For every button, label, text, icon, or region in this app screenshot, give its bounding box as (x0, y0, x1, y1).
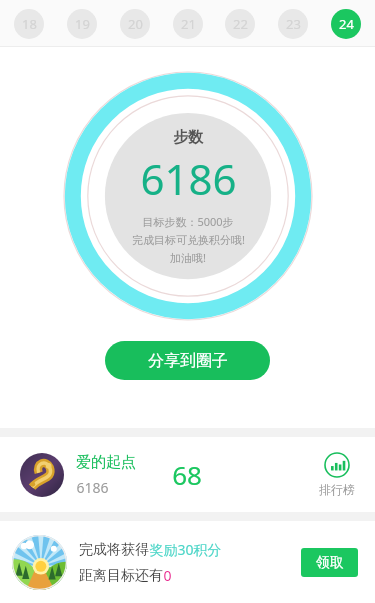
staticText: 完成目标可兑换积分哦! (132, 232, 245, 247)
button[interactable]: 领取 (301, 548, 358, 577)
staticText: 6186 (76, 478, 109, 497)
staticText: 排行榜 (319, 482, 355, 497)
button[interactable]: 20 (120, 9, 150, 39)
staticText: 距离目标还有 (79, 567, 163, 585)
button[interactable]: 爱的起点 (0, 437, 375, 512)
staticText: 0 (163, 566, 172, 585)
staticText: 加油哦! (170, 250, 206, 265)
staticText: 23 (286, 15, 301, 33)
button[interactable]: 21 (173, 9, 203, 39)
staticText: 20 (128, 15, 143, 33)
button[interactable]: 19 (67, 9, 97, 39)
staticText: 19 (75, 15, 90, 33)
staticText: 22 (233, 15, 248, 33)
staticText: 68 (172, 457, 202, 492)
staticText: 分享到圈子 (148, 351, 228, 371)
staticText: 目标步数：5000步 (142, 214, 234, 229)
staticText: 奖励30积分 (149, 540, 222, 559)
staticText: 24 (339, 15, 354, 33)
staticText: 领取 (316, 554, 344, 572)
staticText: 完成将获得 (79, 541, 149, 559)
staticText: 6186 (140, 150, 237, 207)
button[interactable]: 22 (225, 9, 255, 39)
staticText: 18 (22, 15, 37, 33)
button[interactable]: 排行榜 (315, 448, 359, 501)
button[interactable]: 24 (331, 9, 361, 39)
staticText: 步数 (173, 128, 203, 147)
button[interactable]: 23 (278, 9, 308, 39)
button[interactable]: 18 (14, 9, 44, 39)
button[interactable]: 分享到圈子 (105, 341, 270, 380)
staticText: 爱的起点 (76, 453, 136, 472)
staticText: 21 (181, 15, 196, 33)
